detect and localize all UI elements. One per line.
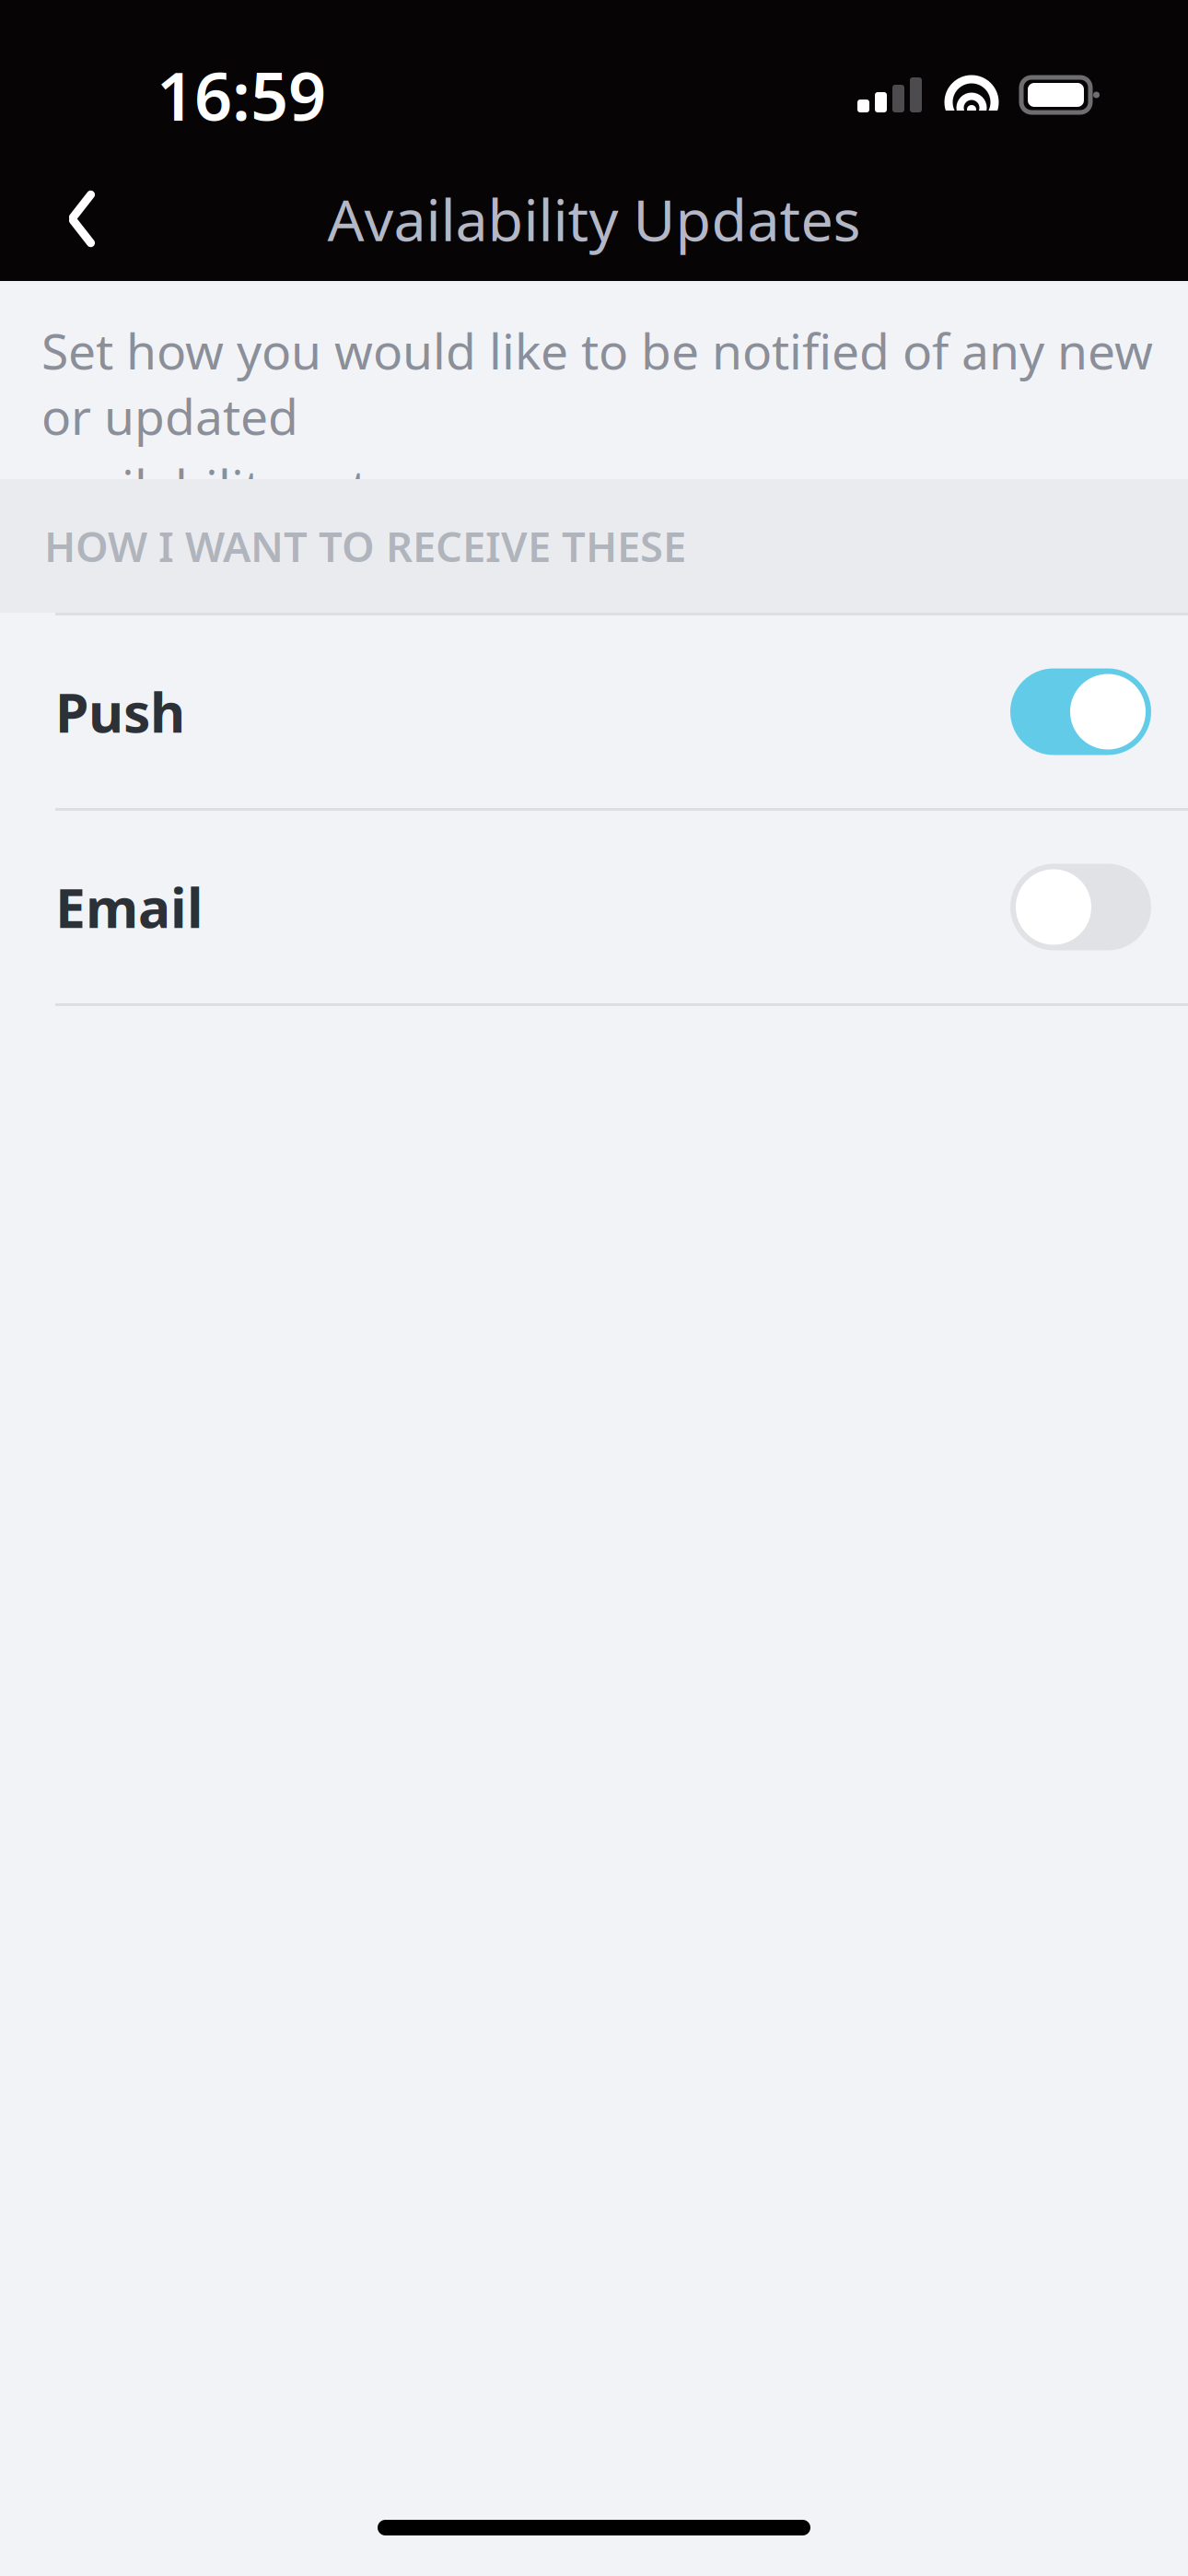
staticText: 16:59 [157, 51, 326, 139]
button[interactable]: Push [0, 615, 1188, 811]
staticText: Availability Updates [327, 180, 861, 257]
staticText: HOW I WANT TO RECEIVE THESE [44, 518, 686, 574]
staticText: Email [55, 871, 203, 943]
staticText: availability sets [41, 454, 392, 519]
staticText: Set how you would like to be notified of… [41, 318, 1153, 448]
button[interactable]: Email [0, 811, 1188, 1006]
button[interactable]: Back [31, 157, 133, 281]
staticText: Push [55, 676, 185, 748]
